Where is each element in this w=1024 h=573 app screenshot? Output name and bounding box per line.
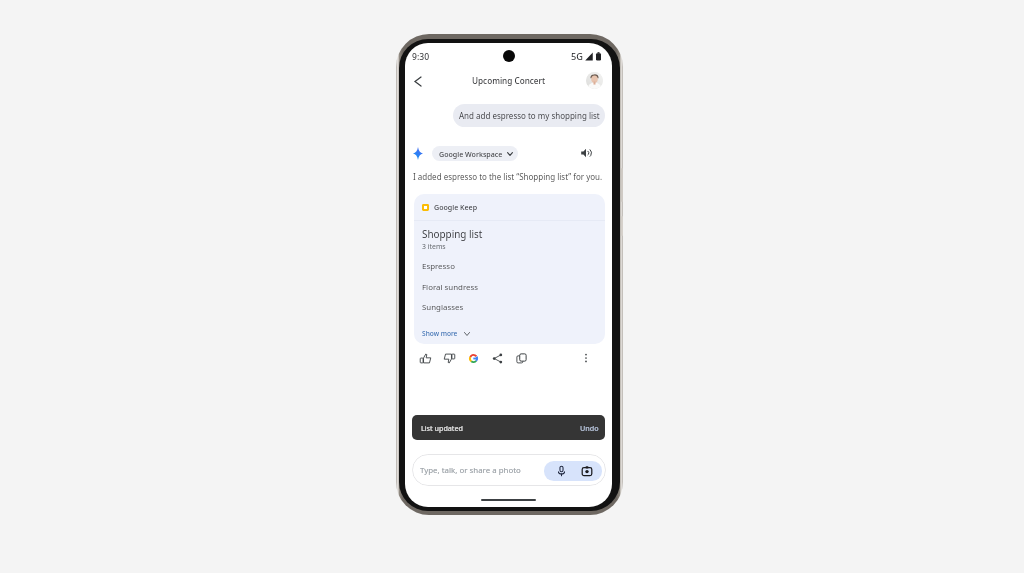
button[interactable]: List updated: [412, 415, 605, 440]
staticText: Upcoming Concert: [472, 75, 546, 86]
button[interactable]: Camera: [579, 463, 595, 479]
staticText: Type, talk, or share a photo: [420, 465, 521, 476]
staticText: Shopping list: [422, 227, 483, 240]
button[interactable]: More options: [578, 350, 594, 366]
button[interactable]: Type, talk, or share a photo: [412, 454, 606, 486]
button[interactable]: Show more: [422, 329, 470, 338]
button[interactable]: Undo: [580, 423, 599, 433]
staticText: Show more: [422, 329, 458, 338]
staticText: List updated: [421, 423, 463, 433]
button[interactable]: Google Keep: [414, 194, 605, 344]
staticText: I added espresso to the list “Shopping l…: [413, 171, 603, 182]
staticText: Undo: [580, 423, 599, 433]
staticText: Floral sundress: [422, 282, 479, 293]
staticText: And add espresso to my shopping list: [459, 110, 600, 121]
button[interactable]: And add espresso to my shopping list: [453, 104, 605, 127]
staticText: 9:30: [412, 51, 430, 63]
staticText: 5G: [571, 50, 583, 63]
button[interactable]: Voice input: [553, 463, 569, 479]
button[interactable]: Back: [408, 71, 428, 91]
staticText: Google Workspace: [439, 149, 503, 159]
button[interactable]: Share: [489, 350, 505, 366]
staticText: 3 items: [422, 242, 446, 251]
staticText: Google Keep: [434, 202, 478, 212]
button[interactable]: Copy: [513, 350, 529, 366]
button[interactable]: Search with Google: [465, 350, 481, 366]
staticText: Sunglasses: [422, 302, 464, 313]
button[interactable]: Dislike: [441, 350, 457, 366]
button[interactable]: Profile: [586, 72, 603, 89]
button[interactable]: Google Workspace: [432, 146, 518, 161]
button[interactable]: Like: [417, 350, 433, 366]
button[interactable]: Read aloud: [578, 145, 594, 161]
staticText: Espresso: [422, 261, 455, 272]
